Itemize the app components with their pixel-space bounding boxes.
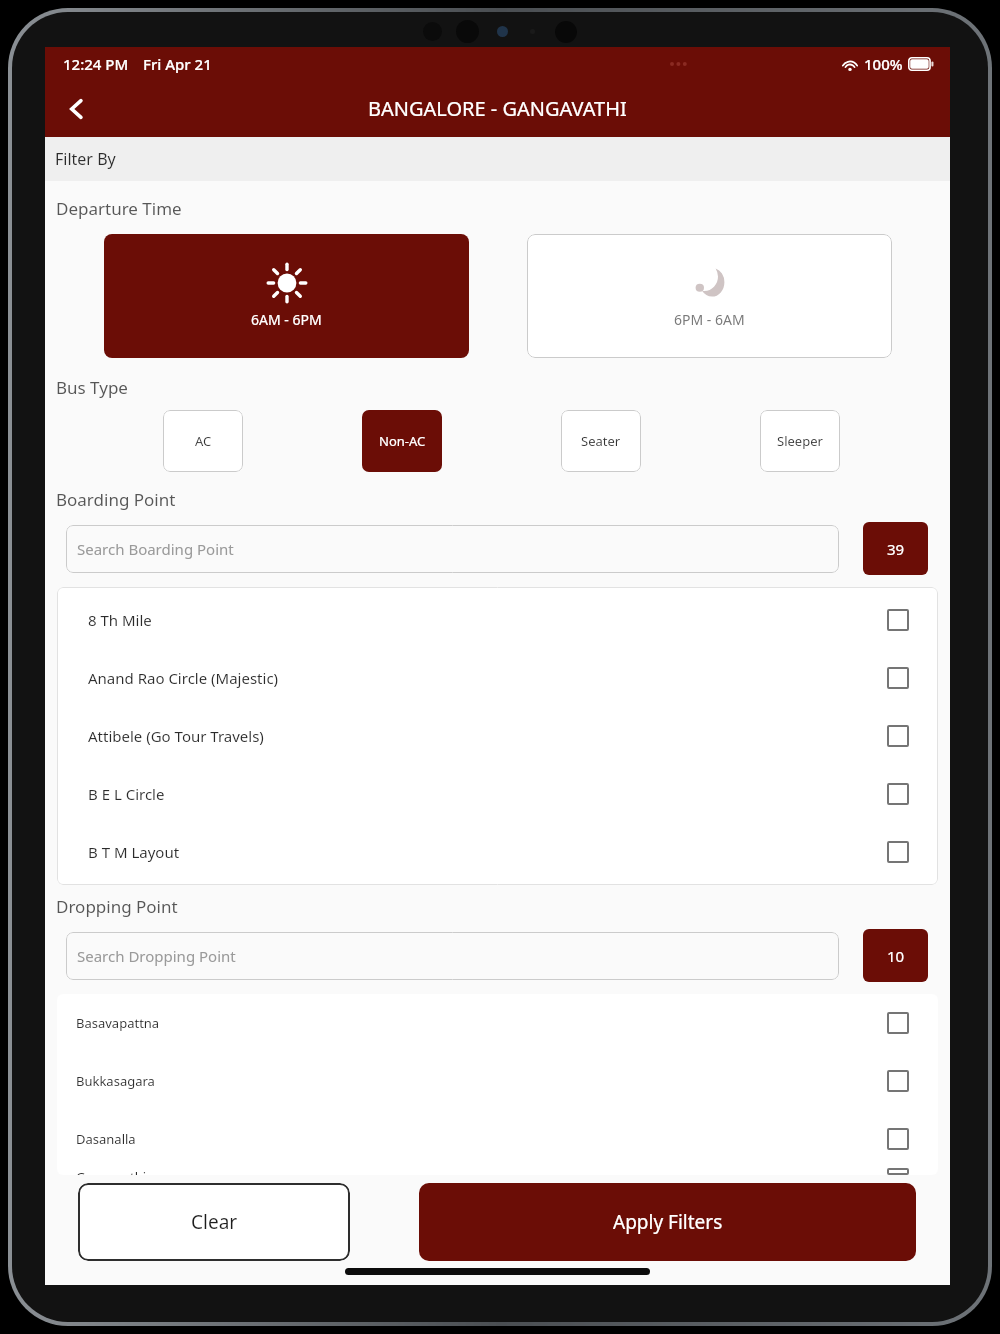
- staticText: Fri Apr 21: [143, 54, 212, 74]
- staticText: Apply Filters: [613, 1209, 723, 1235]
- button[interactable]: Sleeper: [760, 410, 840, 472]
- staticText: Attibele (Go Tour Travels): [88, 726, 264, 746]
- staticText: Dasanalla: [76, 1130, 136, 1148]
- staticText: Seater: [581, 432, 621, 450]
- staticText: Dropping Point: [56, 895, 178, 918]
- staticText: 39: [887, 539, 905, 559]
- staticText: AC: [195, 432, 212, 450]
- staticText: B E L Circle: [88, 784, 165, 804]
- button[interactable]: Gangavathi: [57, 1168, 938, 1175]
- staticText: Bukkasagara: [76, 1072, 155, 1090]
- button[interactable]: Back: [53, 85, 101, 133]
- button[interactable]: 8 Th Mile: [57, 591, 938, 649]
- button[interactable]: Dasanalla: [57, 1110, 938, 1168]
- staticText: Search Dropping Point: [77, 946, 236, 966]
- staticText: Filter By: [55, 148, 116, 170]
- staticText: Gangavathi: [76, 1168, 147, 1175]
- button[interactable]: Apply Filters: [419, 1183, 916, 1261]
- staticText: Anand Rao Circle (Majestic): [88, 668, 279, 688]
- button[interactable]: Search Dropping Point: [66, 932, 839, 980]
- staticText: 100%: [864, 54, 903, 74]
- staticText: Non-AC: [379, 432, 426, 450]
- staticText: Sleeper: [777, 432, 823, 450]
- staticText: 12:24 PM: [63, 54, 129, 74]
- button[interactable]: 39: [863, 522, 928, 575]
- button[interactable]: B T M Layout: [57, 823, 938, 881]
- staticText: 6AM - 6PM: [251, 310, 322, 329]
- staticText: Basavapattna: [76, 1014, 160, 1032]
- button[interactable]: Anand Rao Circle (Majestic): [57, 649, 938, 707]
- button[interactable]: 6PM - 6AM: [527, 234, 892, 358]
- staticText: BANGALORE - GANGAVATHI: [368, 95, 627, 122]
- staticText: B T M Layout: [88, 842, 180, 862]
- staticText: 6PM - 6AM: [674, 310, 745, 329]
- button[interactable]: Non-AC: [362, 410, 442, 472]
- button[interactable]: Bukkasagara: [57, 1052, 938, 1110]
- staticText: Clear: [191, 1209, 238, 1235]
- button[interactable]: B E L Circle: [57, 765, 938, 823]
- button[interactable]: Attibele (Go Tour Travels): [57, 707, 938, 765]
- button[interactable]: 6AM - 6PM: [104, 234, 469, 358]
- staticText: Departure Time: [56, 197, 182, 220]
- staticText: Bus Type: [56, 376, 128, 399]
- button[interactable]: Basavapattna: [57, 994, 938, 1052]
- button[interactable]: AC: [163, 410, 243, 472]
- button[interactable]: 10: [863, 929, 928, 982]
- staticText: 8 Th Mile: [88, 610, 152, 630]
- button[interactable]: Search Boarding Point: [66, 525, 839, 573]
- button[interactable]: Seater: [561, 410, 641, 472]
- staticText: 10: [887, 946, 905, 966]
- staticText: Boarding Point: [56, 488, 176, 511]
- button[interactable]: Clear: [78, 1183, 350, 1261]
- staticText: Search Boarding Point: [77, 539, 234, 559]
